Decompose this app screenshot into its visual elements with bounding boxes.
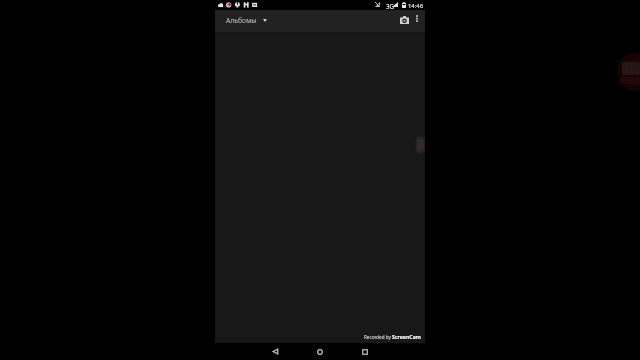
staticText: 14:46 (408, 2, 424, 10)
button[interactable]: More options (410, 11, 424, 25)
staticText: 3G (386, 2, 395, 10)
button[interactable]: Recent apps (353, 343, 377, 360)
staticText: Recorded by (364, 334, 392, 340)
staticText: Альбомы (226, 16, 257, 25)
button[interactable]: Camera (395, 11, 413, 29)
button[interactable]: Home (308, 343, 332, 360)
staticText: ScreenCam (392, 333, 421, 340)
button[interactable]: Альбомы (215, 13, 275, 28)
button[interactable]: Back (263, 343, 287, 360)
